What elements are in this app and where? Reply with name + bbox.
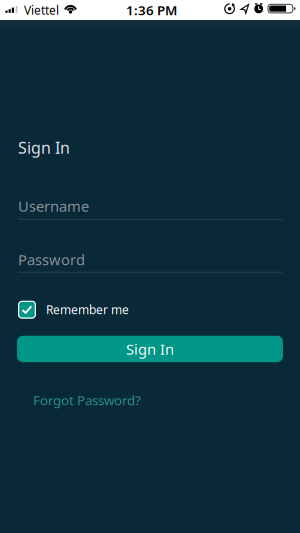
staticText: Sign In	[18, 137, 70, 158]
staticText: Forgot Password?	[33, 391, 141, 409]
staticText: Sign In	[126, 339, 174, 359]
button[interactable]: Sign In	[17, 336, 283, 362]
staticText: Username	[18, 196, 89, 216]
staticText: 1:36 PM	[126, 1, 177, 19]
staticText: Viettel	[24, 2, 59, 18]
staticText: Password	[18, 250, 85, 269]
staticText: Remember me	[46, 302, 129, 318]
button[interactable]: Remember me	[18, 301, 129, 319]
button[interactable]: Forgot Password?	[33, 391, 141, 409]
button[interactable]: Password	[18, 250, 282, 273]
button[interactable]: Username	[18, 196, 282, 220]
